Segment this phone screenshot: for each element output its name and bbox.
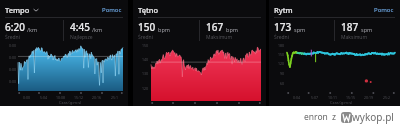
button[interactable]: Pomoc	[373, 4, 395, 16]
button[interactable]: Tętno	[138, 5, 159, 15]
staticText: Średni	[138, 34, 153, 41]
staticText: 187	[341, 20, 359, 34]
staticText: Maksimum	[206, 34, 233, 41]
staticText: 15:15	[346, 95, 355, 100]
staticText: Tempo	[5, 5, 30, 15]
staticText: 173	[274, 20, 292, 34]
staticText: 150	[138, 20, 156, 34]
button[interactable]: Tempo	[5, 5, 39, 15]
staticText: 90	[280, 71, 285, 76]
button[interactable]: Rytm	[274, 5, 293, 15]
staticText: Średni	[274, 34, 289, 41]
staticText: spm	[294, 26, 306, 33]
staticText: 0:00	[9, 55, 16, 60]
staticText: bpm	[226, 26, 238, 33]
staticText: Najlepsze	[70, 34, 93, 41]
staticText: 167	[206, 20, 224, 34]
staticText: 4:45	[70, 20, 90, 34]
staticText: 120	[142, 86, 149, 91]
button[interactable]: enron	[304, 110, 394, 124]
staticText: 130	[142, 71, 149, 76]
staticText: Maksimum	[341, 34, 368, 41]
staticText: 20:19	[364, 95, 373, 100]
button[interactable]: Pomoc	[101, 4, 123, 16]
staticText: bpm	[158, 26, 170, 33]
staticText: 140	[142, 57, 149, 62]
staticText: 0:00	[9, 67, 16, 72]
staticText: 25:1	[111, 95, 118, 100]
staticText: 0:00	[23, 95, 30, 100]
staticText: 10:08	[56, 95, 65, 100]
staticText: 150	[142, 43, 149, 48]
staticText: 150	[278, 52, 285, 57]
staticText: enron	[304, 111, 328, 123]
staticText: /km	[27, 26, 38, 33]
staticText: Czas (g:m:s)	[330, 100, 353, 105]
staticText: z	[332, 111, 336, 123]
staticText: 6:20	[5, 20, 25, 34]
staticText: /km	[92, 26, 103, 33]
staticText: 5:04	[40, 95, 47, 100]
staticText: 0:00	[9, 79, 16, 84]
staticText: Czas (g:m:s)	[59, 100, 82, 105]
staticText: Średni	[5, 34, 20, 41]
staticText: 60	[280, 81, 285, 86]
staticText: Rytm	[274, 5, 293, 15]
staticText: spm	[361, 26, 373, 33]
staticText: wykop.pl	[352, 110, 394, 124]
staticText: 10:11	[328, 95, 337, 100]
other: Change metric	[33, 7, 39, 13]
staticText: 120	[278, 61, 285, 66]
staticText: 15:12	[74, 95, 83, 100]
staticText: 180	[278, 43, 285, 48]
staticText: 20:16	[92, 95, 101, 100]
staticText: Tętno	[138, 5, 159, 15]
staticText: 0:04	[293, 95, 300, 100]
staticText: 0:00	[9, 43, 16, 48]
staticText: 5:07	[311, 95, 318, 100]
staticText: 25:2	[383, 95, 390, 100]
